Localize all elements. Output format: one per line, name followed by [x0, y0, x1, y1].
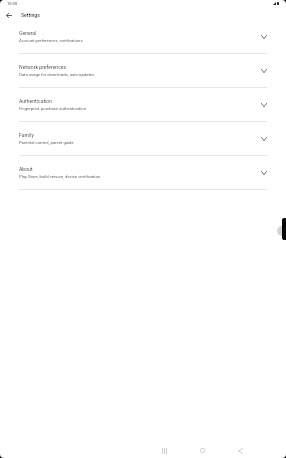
- button[interactable]: Authentication: [19, 88, 267, 122]
- staticText: About: [19, 166, 33, 172]
- staticText: General: [19, 30, 37, 36]
- button[interactable]: General: [19, 20, 267, 54]
- staticText: Authentication: [19, 98, 53, 104]
- button[interactable]: Back: [231, 442, 249, 458]
- button[interactable]: Edge panel: [282, 218, 286, 240]
- button[interactable]: Family: [19, 122, 267, 156]
- staticText: 10:30: [7, 1, 18, 6]
- staticText: Family: [19, 132, 34, 138]
- button[interactable]: Home: [193, 442, 211, 458]
- staticText: Network preferences: [19, 64, 67, 70]
- button[interactable]: Recents: [155, 442, 173, 458]
- staticText: Settings: [21, 12, 40, 18]
- button[interactable]: About: [19, 156, 267, 190]
- staticText: Account preferences, notifications: [19, 38, 83, 43]
- staticText: Data usage for downloads, auto-updates: [19, 72, 95, 77]
- button[interactable]: Back: [2, 9, 15, 22]
- staticText: Parental control, parent guide: [19, 140, 74, 145]
- staticText: Fingerprint, purchase authentication: [19, 106, 86, 111]
- staticText: Play Store, build version, device certif…: [19, 174, 101, 179]
- button[interactable]: Network preferences: [19, 54, 267, 88]
